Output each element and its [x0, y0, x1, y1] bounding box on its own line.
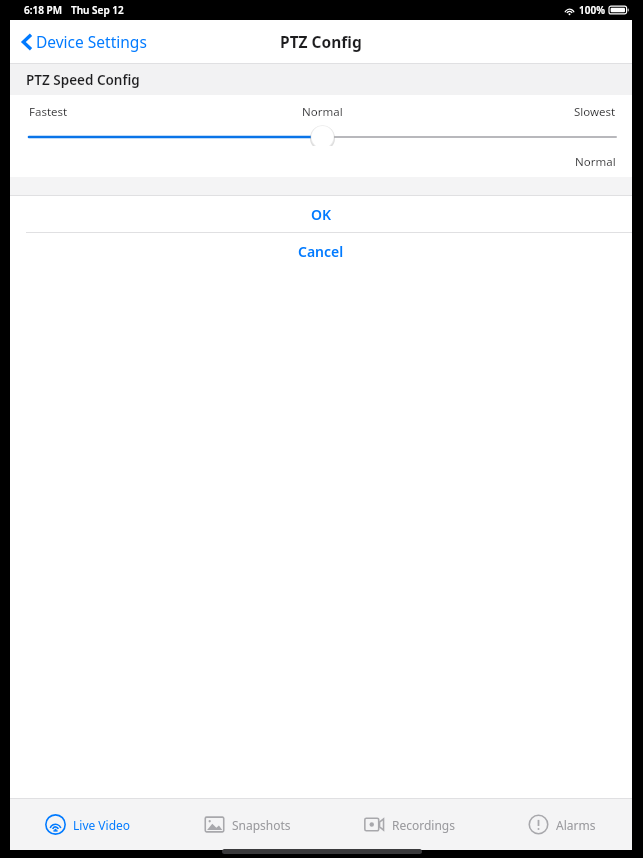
staticText: Normal: [302, 104, 343, 120]
staticText: Snapshots: [232, 817, 291, 833]
button[interactable]: Recordings: [358, 806, 461, 843]
button[interactable]: Alarms: [522, 806, 602, 843]
staticText: Alarms: [556, 817, 596, 833]
staticText: PTZ Speed Config: [26, 71, 140, 89]
button[interactable]: Cancel: [10, 233, 632, 269]
staticText: PTZ Config: [280, 31, 362, 52]
button[interactable]: Live Video: [39, 806, 137, 843]
button[interactable]: Device Settings: [10, 25, 157, 58]
staticText: Device Settings: [36, 31, 147, 52]
staticText: Normal: [575, 154, 616, 170]
staticText: 6:18 PM: [24, 3, 62, 17]
staticText: Fastest: [29, 104, 68, 120]
staticText: Thu Sep 12: [71, 3, 124, 17]
staticText: OK: [311, 205, 332, 224]
staticText: Live Video: [73, 817, 131, 833]
staticText: Slowest: [574, 104, 616, 120]
staticText: Recordings: [392, 817, 455, 833]
button[interactable]: OK: [10, 196, 632, 232]
button[interactable]: Snapshots: [198, 806, 297, 843]
staticText: Cancel: [298, 242, 344, 261]
staticText: 100%: [579, 3, 605, 17]
button[interactable]: PTZ speed slider: [10, 128, 632, 146]
